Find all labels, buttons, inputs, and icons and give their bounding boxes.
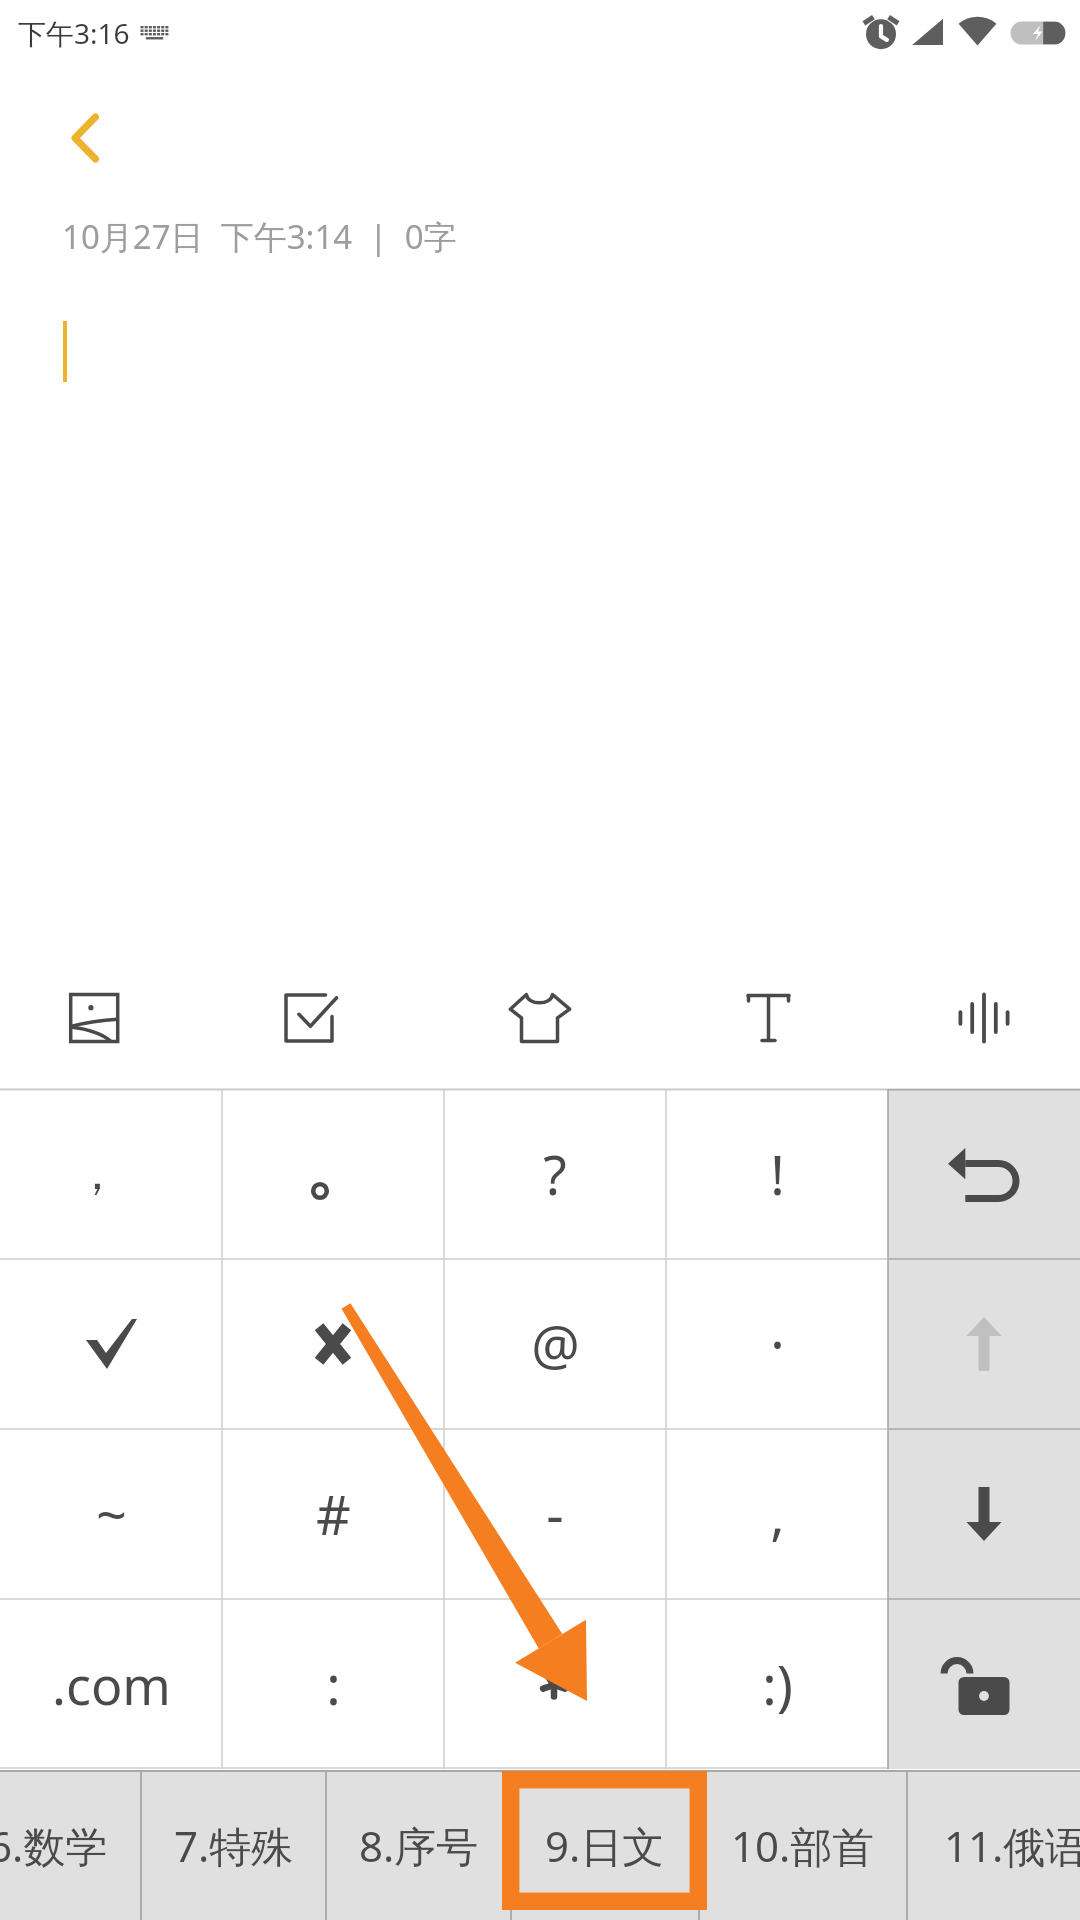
button[interactable]: 8.序号: [326, 1771, 511, 1920]
button[interactable]: Insert image: [50, 973, 140, 1063]
button[interactable]: Unlock keyboard: [888, 1599, 1080, 1769]
button[interactable]: 11.俄语: [907, 1771, 1080, 1920]
button[interactable]: Undo: [888, 1089, 1080, 1259]
staticText: :): [762, 1647, 793, 1721]
staticText: @: [531, 1307, 580, 1381]
staticText: 10月27日 下午3:14 | 0字: [62, 214, 457, 259]
button[interactable]: [444, 1599, 666, 1769]
button[interactable]: 9.日文: [511, 1771, 699, 1920]
button[interactable]: :: [222, 1599, 444, 1769]
button[interactable]: [0, 1259, 222, 1429]
staticText: 10.部首: [731, 1817, 875, 1874]
button[interactable]: -: [444, 1429, 666, 1599]
button[interactable]: ·: [666, 1259, 888, 1429]
button[interactable]: Checklist: [264, 973, 354, 1063]
button[interactable]: Back: [40, 92, 132, 184]
button[interactable]: [222, 1259, 444, 1429]
button[interactable]: ~: [0, 1429, 222, 1599]
button[interactable]: [222, 1089, 444, 1259]
button[interactable]: Move down: [888, 1429, 1080, 1599]
staticText: -: [546, 1477, 564, 1551]
button[interactable]: Voice input: [939, 973, 1029, 1063]
button[interactable]: ?: [444, 1089, 666, 1259]
staticText: :: [326, 1647, 341, 1721]
button[interactable]: :): [666, 1599, 888, 1769]
staticText: 9.日文: [545, 1817, 665, 1874]
staticText: ·: [770, 1307, 785, 1381]
staticText: 6.数学: [0, 1817, 108, 1874]
staticText: 7.特殊: [174, 1817, 294, 1874]
button[interactable]: Move up: [888, 1259, 1080, 1429]
button[interactable]: !: [666, 1089, 888, 1259]
staticText: #: [316, 1477, 351, 1551]
staticText: 下午3:16: [18, 14, 130, 52]
button[interactable]: ，: [0, 1089, 222, 1259]
staticText: 11.俄语: [944, 1817, 1080, 1874]
staticText: ~: [96, 1477, 127, 1551]
button[interactable]: 7.特殊: [141, 1771, 326, 1920]
staticText: ，: [74, 1145, 120, 1203]
button[interactable]: Sticker: [495, 973, 585, 1063]
button[interactable]: 10.部首: [699, 1771, 907, 1920]
staticText: ,: [770, 1477, 785, 1551]
button[interactable]: ,: [666, 1429, 888, 1599]
staticText: 8.序号: [359, 1817, 479, 1874]
staticText: .com: [52, 1649, 171, 1720]
button[interactable]: #: [222, 1429, 444, 1599]
button[interactable]: Text style: [724, 973, 814, 1063]
button[interactable]: @: [444, 1259, 666, 1429]
button[interactable]: 6.数学: [0, 1771, 141, 1920]
button[interactable]: .com: [0, 1599, 222, 1769]
staticText: !: [770, 1137, 785, 1211]
staticText: ?: [543, 1137, 567, 1211]
